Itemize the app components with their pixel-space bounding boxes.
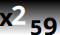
staticText: 2	[11, 0, 26, 32]
staticText: 9	[43, 9, 57, 35]
staticText: x	[0, 1, 13, 33]
staticText: 5	[30, 13, 42, 35]
